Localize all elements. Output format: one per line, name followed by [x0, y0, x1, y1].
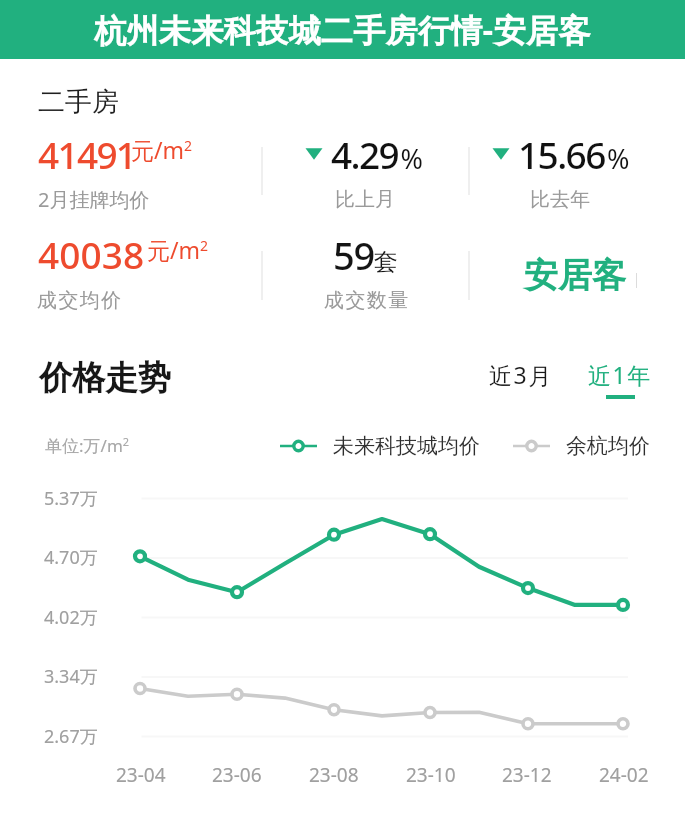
staticText: 40038	[38, 229, 145, 279]
staticText: 未来科技城均价	[333, 433, 480, 459]
staticText: 近3月	[489, 359, 553, 390]
staticText: 23-12	[502, 762, 552, 788]
staticText: 杭州未来科技城二手房行情-安居客	[94, 8, 591, 52]
button[interactable]: 近1年	[584, 355, 656, 403]
button[interactable]: 余杭均价	[513, 433, 650, 459]
button[interactable]: 近3月	[485, 355, 557, 394]
staticText: 元/m2	[131, 134, 193, 165]
staticText: 23-04	[116, 762, 166, 788]
staticText: 成交数量	[324, 288, 410, 313]
staticText: 23-10	[406, 762, 456, 788]
button[interactable]: 杭州未来科技城二手房行情-安居客	[0, 0, 685, 59]
staticText: 59套	[333, 229, 399, 281]
staticText: 余杭均价	[566, 433, 650, 459]
staticText: 比上月	[335, 187, 395, 212]
staticText: 2月挂牌均价	[38, 186, 150, 213]
staticText: 15.66 %	[518, 129, 630, 179]
staticText: 4.29 %	[331, 129, 423, 179]
staticText: 23-08	[309, 762, 359, 788]
staticText: 比去年	[530, 187, 590, 212]
staticText: 价格走势	[39, 357, 171, 399]
staticText: 24-02	[599, 762, 649, 788]
staticText: 5.37万	[44, 486, 98, 511]
staticText: 安居客	[524, 254, 626, 297]
staticText: 2.67万	[44, 724, 98, 749]
staticText: 41491	[38, 129, 136, 179]
staticText: 成交均价	[37, 288, 123, 313]
staticText: 3.34万	[44, 664, 98, 689]
staticText: 23-06	[212, 762, 262, 788]
staticText: 二手房	[38, 85, 119, 119]
staticText: 4.02万	[44, 605, 98, 630]
staticText: 4.70万	[44, 545, 98, 570]
staticText: 元/m2	[147, 234, 209, 265]
button[interactable]: 未来科技城均价	[280, 433, 480, 459]
staticText: 近1年	[588, 359, 652, 390]
staticText: 单位:万/m2	[45, 434, 130, 457]
other: 价格走势折线图	[0, 0, 685, 820]
